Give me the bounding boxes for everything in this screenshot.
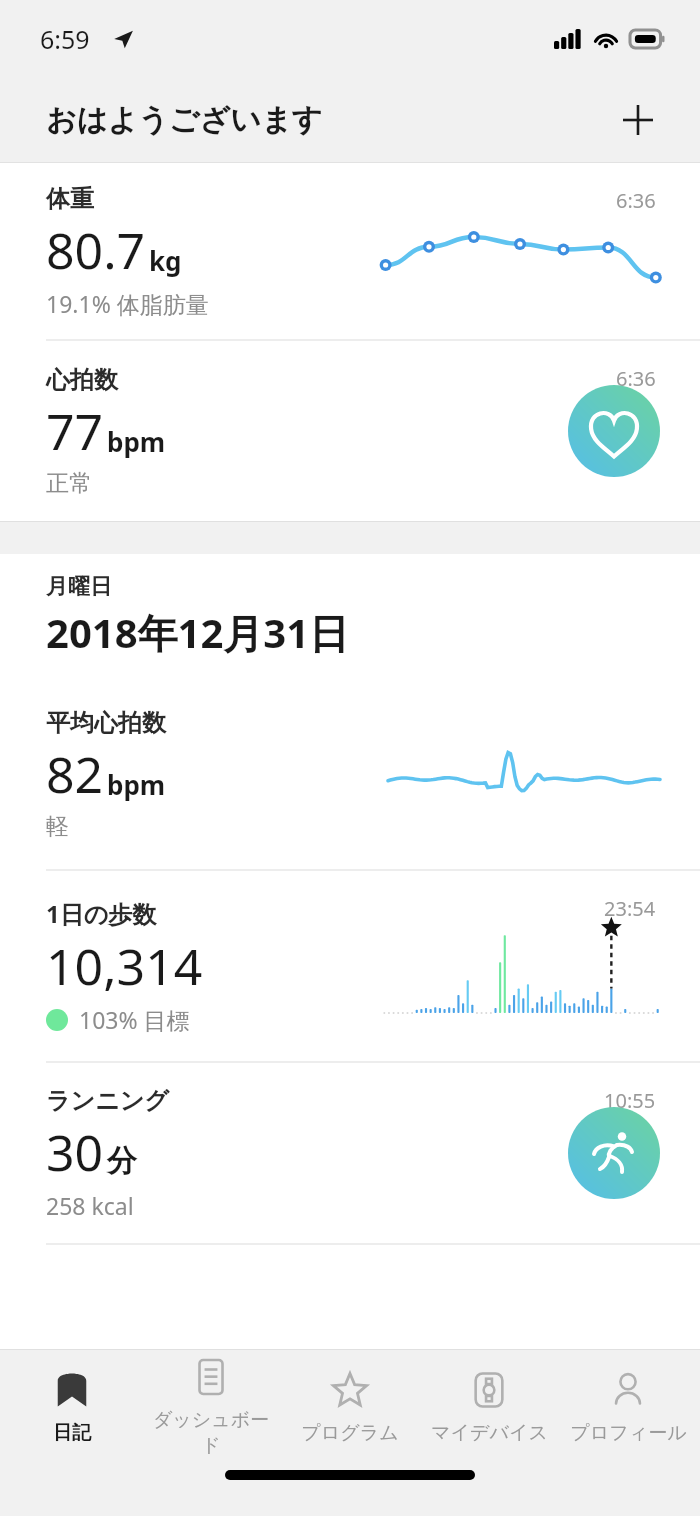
button[interactable]: 体重 [0,163,700,339]
staticText: 103% 目標 [79,1004,190,1035]
staticText: 23:54 [604,895,656,922]
staticText: 1日の歩数 [46,897,157,930]
button[interactable]: 平均心拍数 [0,679,700,869]
staticText: bpm [107,424,166,459]
button[interactable]: ダッシュボード [144,1354,278,1458]
staticText: 10:55 [604,1087,656,1114]
staticText: 分 [107,1142,137,1180]
staticText: 80.7 [46,216,146,284]
staticText: 正常 [46,469,92,498]
staticText: 心拍数 [46,365,118,395]
button[interactable]: Add [612,94,664,146]
staticText: おはようございます [46,101,323,139]
staticText: 258 kcal [46,1190,134,1221]
staticText: bpm [107,767,166,802]
staticText: プログラム [301,1421,399,1445]
staticText: 体重 [46,184,94,214]
button[interactable]: ランニング [0,1063,700,1243]
button[interactable]: 1日の歩数 [0,871,700,1061]
button[interactable]: プロフィール [561,1367,695,1445]
staticText: ランニング [46,1086,169,1116]
staticText: 6:36 [616,365,656,392]
button[interactable]: マイデバイス [422,1367,556,1445]
button[interactable]: 日記 [5,1367,139,1445]
staticText: 10,314 [46,932,203,1000]
staticText: 6:59 [40,22,90,56]
staticText: プロフィール [570,1421,687,1445]
staticText: マイデバイス [431,1421,548,1445]
staticText: 月曜日 [46,573,112,601]
staticText: 6:36 [616,187,656,214]
staticText: 77 [46,397,104,465]
staticText: ダッシュボード [144,1408,278,1458]
staticText: 30 [46,1118,104,1186]
staticText: 19.1% 体脂肪量 [46,288,209,319]
staticText: 平均心拍数 [46,708,166,738]
staticText: kg [149,243,182,278]
staticText: 82 [46,740,104,808]
staticText: 軽 [46,812,69,841]
button[interactable]: プログラム [283,1367,417,1445]
staticText: 日記 [53,1421,91,1445]
button[interactable]: 心拍数 [0,341,700,521]
staticText: 2018年12月31日 [46,605,350,660]
